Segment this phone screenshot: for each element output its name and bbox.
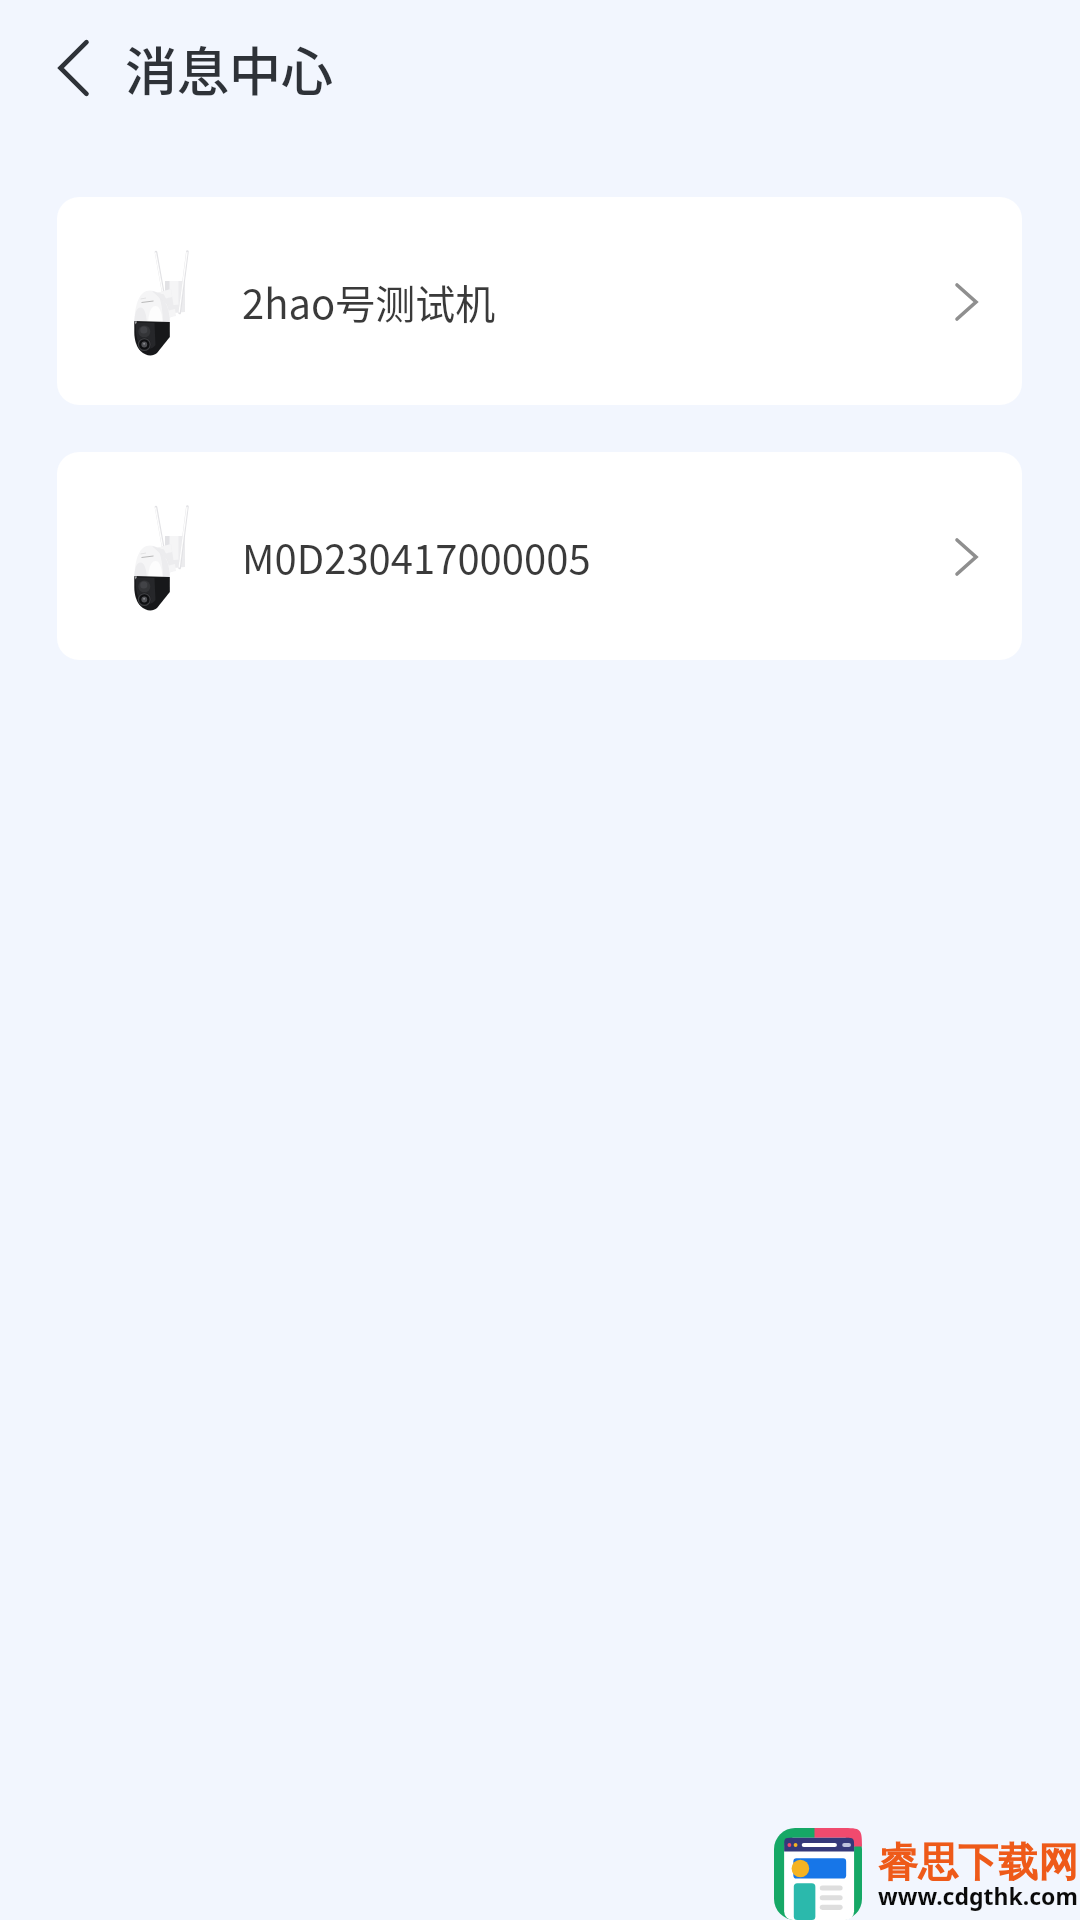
staticText: M0D230417000005 <box>242 528 591 586</box>
staticText: 消息中心 <box>125 31 334 106</box>
button[interactable]: 2hao号测试机 <box>57 197 1022 405</box>
button[interactable]: Back <box>30 25 116 111</box>
button[interactable]: Open device messages <box>938 528 996 586</box>
staticText: www.cdgthk.com <box>878 1880 1078 1911</box>
staticText: 睿思下载网 <box>878 1837 1078 1887</box>
staticText: 2hao号测试机 <box>242 273 496 331</box>
button[interactable]: M0D230417000005 <box>57 452 1022 660</box>
button[interactable]: Open device messages <box>938 273 996 331</box>
